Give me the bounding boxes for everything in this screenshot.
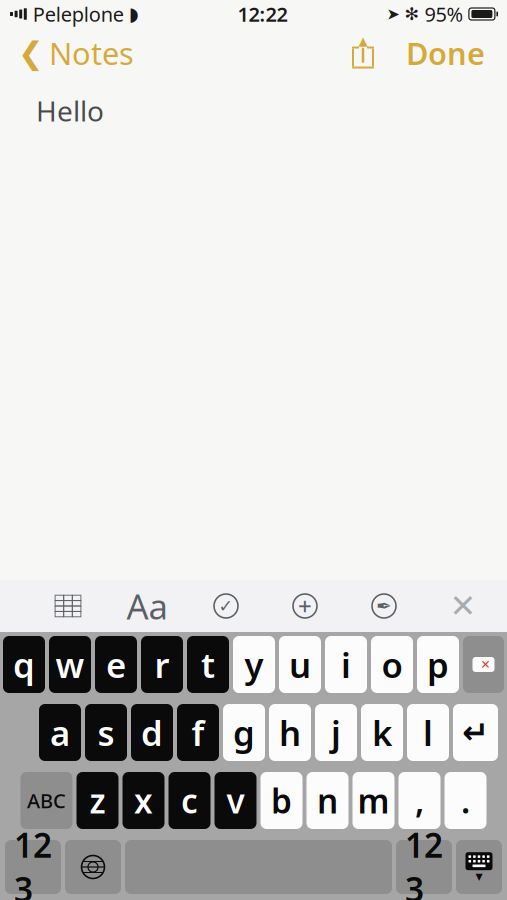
staticText: u	[289, 641, 311, 687]
button[interactable]: h	[269, 704, 311, 761]
button[interactable]: Dismiss keyboard	[441, 586, 485, 626]
staticText: c	[181, 778, 198, 823]
staticText: 95%	[424, 1, 463, 27]
button[interactable]: t	[187, 636, 229, 693]
button[interactable]: ABC	[20, 772, 72, 829]
button[interactable]: s	[85, 704, 127, 761]
button[interactable]: i	[325, 636, 367, 693]
staticText: x	[134, 778, 153, 823]
staticText: h	[279, 709, 301, 755]
button[interactable]: Table	[46, 586, 90, 626]
staticText: ,	[415, 778, 424, 823]
button[interactable]: .	[444, 772, 486, 829]
button[interactable]: l	[407, 704, 449, 761]
staticText: m	[357, 778, 389, 823]
button[interactable]: m	[352, 772, 394, 829]
staticText: ➤	[386, 5, 399, 23]
button[interactable]: c	[168, 772, 210, 829]
button[interactable]: Markup	[362, 586, 406, 626]
button[interactable]: q	[3, 636, 45, 693]
staticText: ✻	[404, 4, 419, 24]
staticText: Notes	[49, 33, 134, 73]
button[interactable]: y	[233, 636, 275, 693]
staticText: ↵	[462, 714, 489, 751]
staticText: v	[226, 778, 244, 823]
button[interactable]: Done	[378, 25, 507, 81]
staticText: ▲	[358, 34, 367, 48]
staticText: a	[50, 709, 70, 755]
button[interactable]: Text formatting	[125, 586, 169, 626]
button[interactable]: b	[260, 772, 302, 829]
staticText: Done	[406, 33, 485, 73]
button[interactable]: u	[279, 636, 321, 693]
button[interactable]: w	[49, 636, 91, 693]
button[interactable]: r	[141, 636, 183, 693]
staticText: Aa	[126, 583, 167, 629]
staticText: Hello	[36, 92, 104, 129]
staticText: ▼	[475, 871, 482, 882]
staticText: ABC	[27, 787, 66, 814]
button[interactable]: e	[95, 636, 137, 693]
button[interactable]: d	[131, 704, 173, 761]
button[interactable]: z	[76, 772, 118, 829]
staticText: .	[461, 778, 470, 823]
staticText: z	[89, 778, 105, 823]
staticText: 12:22	[238, 1, 288, 27]
staticText: w	[55, 641, 84, 687]
staticText: k	[372, 709, 392, 755]
button[interactable]: g	[223, 704, 265, 761]
button[interactable]: f	[177, 704, 219, 761]
button[interactable]: a	[39, 704, 81, 761]
staticText: n	[317, 778, 338, 823]
button[interactable]: 123	[5, 840, 61, 894]
staticText: ❮	[18, 36, 44, 70]
staticText: ✓	[218, 596, 233, 616]
button[interactable]: k	[361, 704, 403, 761]
staticText: e	[106, 641, 126, 687]
button[interactable]: Share	[348, 29, 378, 77]
button[interactable]: v	[214, 772, 256, 829]
button[interactable]: Checklist	[204, 586, 248, 626]
staticText: d	[141, 709, 163, 755]
staticText: ✕	[449, 588, 476, 624]
staticText: 123	[14, 823, 52, 900]
staticText: +	[298, 590, 312, 622]
button[interactable]: Add attachment	[283, 586, 327, 626]
button[interactable]: o	[371, 636, 413, 693]
staticText: ✒	[376, 595, 392, 617]
staticText: q	[13, 641, 35, 687]
button[interactable]: p	[417, 636, 459, 693]
button[interactable]: Hide keyboard	[456, 840, 502, 894]
button[interactable]: x	[122, 772, 164, 829]
staticText: f	[191, 709, 204, 755]
staticText: s	[97, 709, 114, 755]
staticText: i	[341, 641, 351, 687]
button[interactable]: Return	[453, 704, 498, 761]
staticText: ✕	[480, 658, 490, 671]
button[interactable]: Delete	[463, 636, 504, 693]
staticText: t	[201, 641, 215, 687]
staticText: b	[271, 778, 292, 823]
staticText: p	[427, 641, 449, 687]
staticText: j	[331, 709, 341, 755]
staticText: l	[423, 709, 433, 755]
button[interactable]: ,	[398, 772, 440, 829]
staticText: y	[244, 641, 263, 687]
button[interactable]: n	[306, 772, 348, 829]
button[interactable]: Next keyboard	[65, 840, 121, 894]
button[interactable]: ❮	[0, 25, 134, 81]
staticText: Peleplone	[33, 1, 124, 27]
staticText: g	[233, 709, 255, 755]
staticText: ◗	[129, 3, 139, 25]
staticText: o	[381, 641, 402, 687]
staticText: 123	[405, 823, 443, 900]
button[interactable]: 123	[396, 840, 452, 894]
staticText: r	[154, 641, 169, 687]
button[interactable]: j	[315, 704, 357, 761]
